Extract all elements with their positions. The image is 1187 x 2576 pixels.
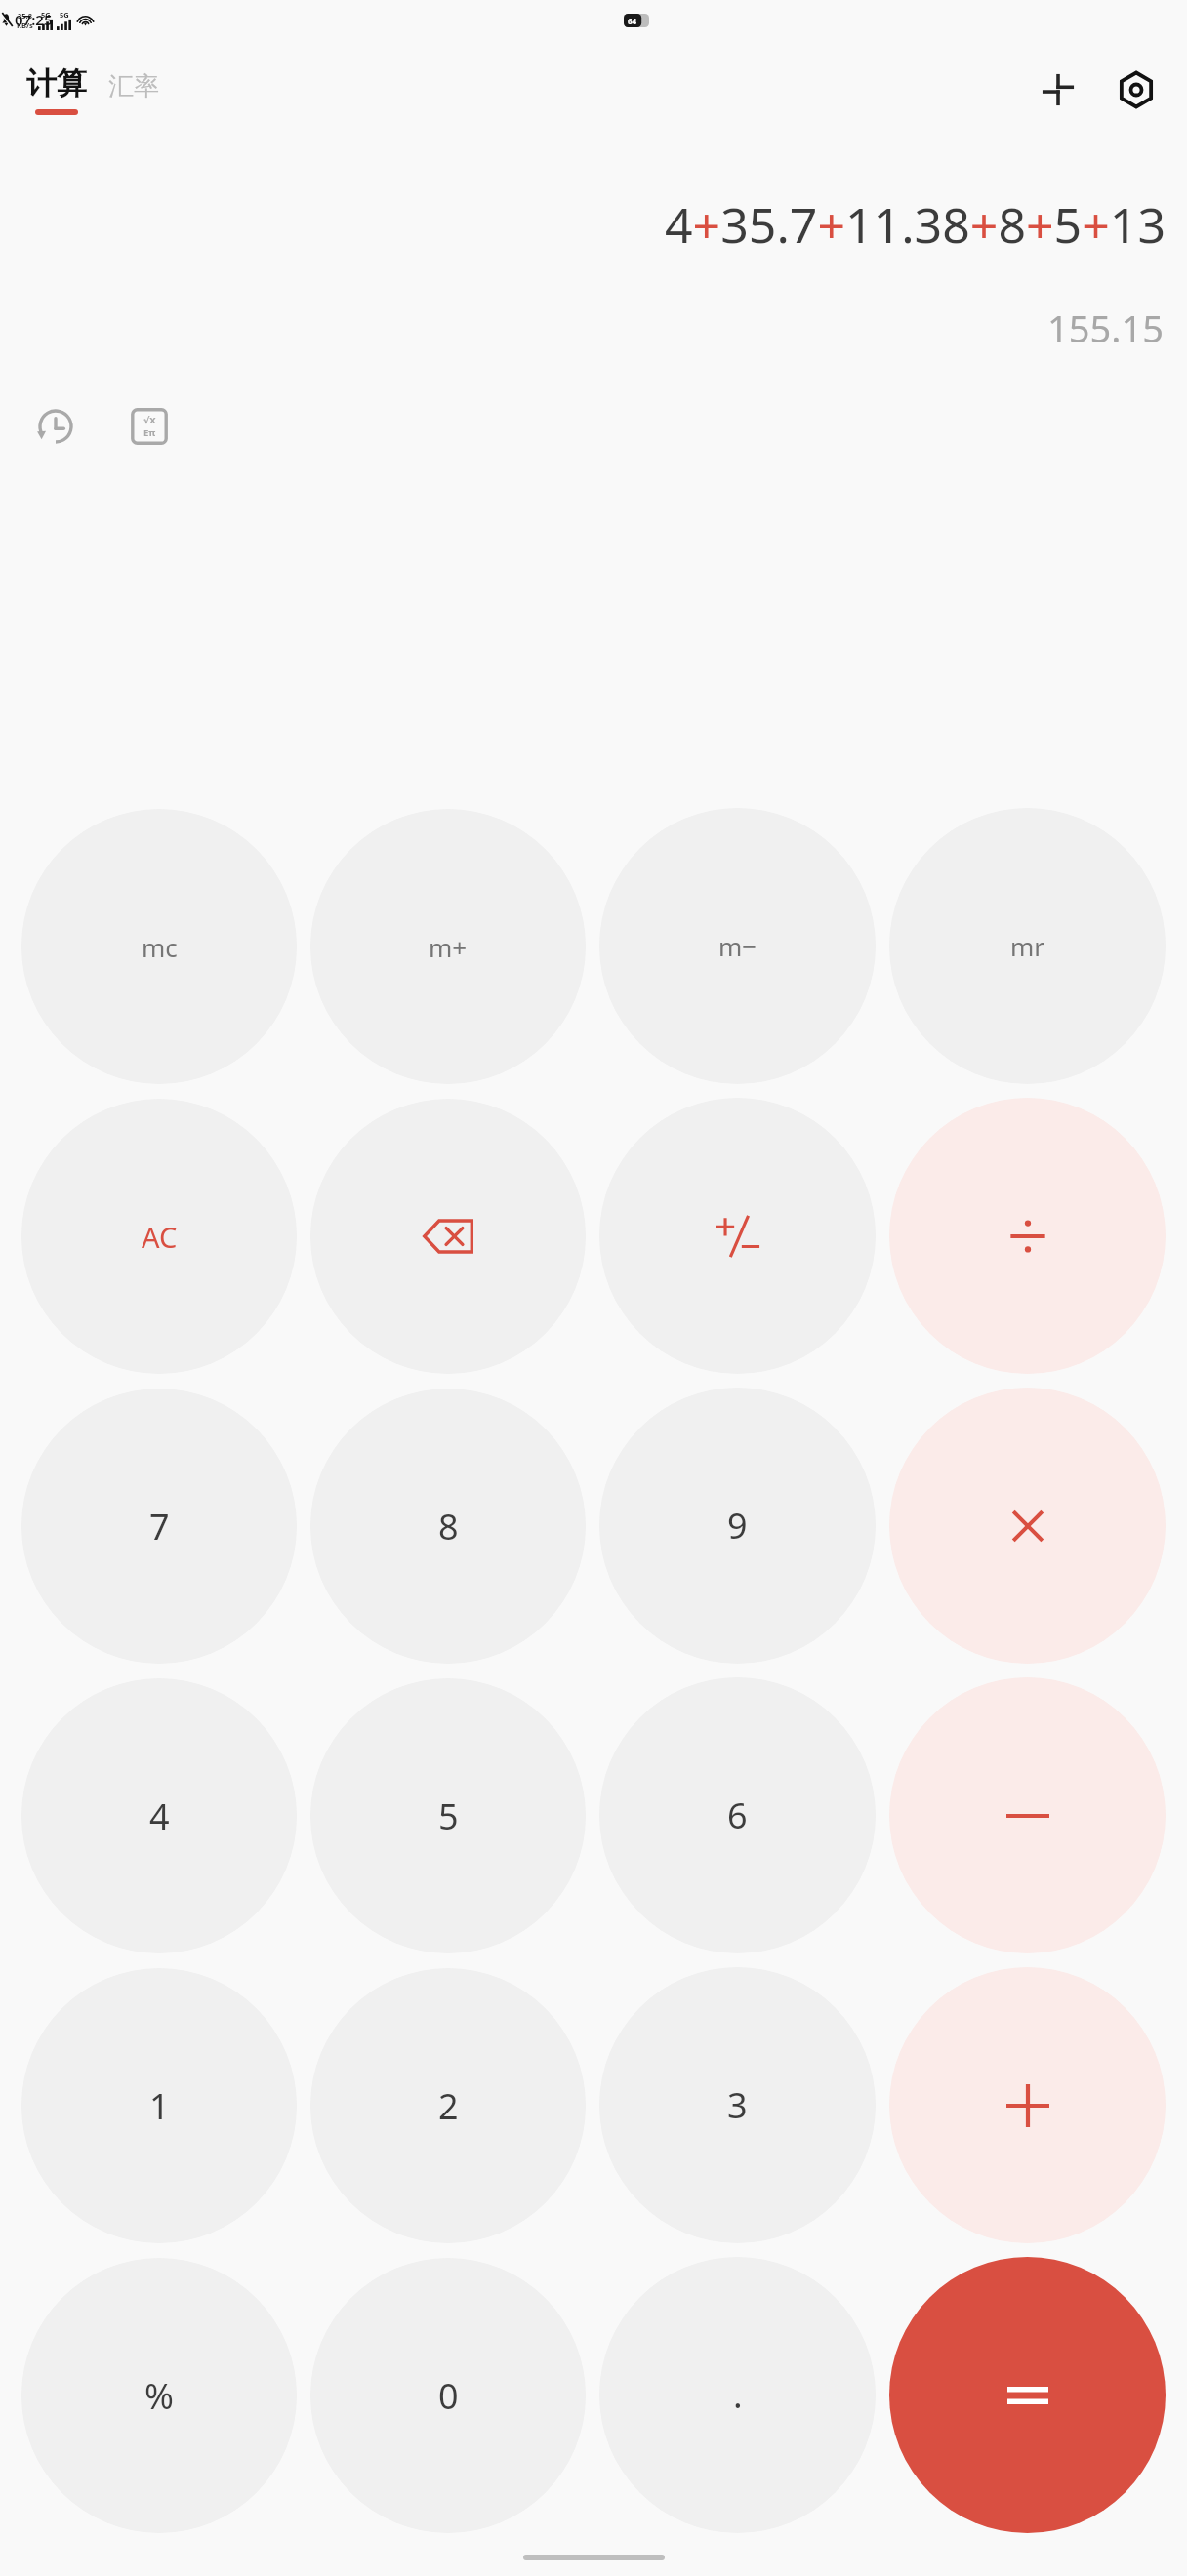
- staticText: AC: [142, 1218, 178, 1256]
- button[interactable]: Settings: [1111, 64, 1162, 115]
- button[interactable]: 7: [21, 1389, 297, 1664]
- button[interactable]: 0: [310, 2258, 586, 2533]
- staticText: Eπ: [143, 426, 156, 439]
- button[interactable]: m+: [310, 809, 586, 1084]
- staticText: 8: [438, 1503, 459, 1550]
- staticText: 5G: [41, 10, 51, 20]
- button[interactable]: Scientific mode: [119, 396, 180, 457]
- staticText: 5: [438, 1792, 459, 1840]
- button[interactable]: 5: [310, 1678, 586, 1953]
- staticText: 0: [438, 2372, 459, 2420]
- staticText: 5G: [60, 10, 69, 20]
- staticText: 4+35.7+11.38+8+5+13: [665, 191, 1166, 258]
- staticText: 2: [438, 2082, 459, 2130]
- button[interactable]: History: [25, 396, 86, 457]
- button[interactable]: AC: [21, 1099, 297, 1374]
- staticText: √X: [143, 414, 156, 426]
- button[interactable]: %: [21, 2258, 297, 2533]
- button[interactable]: mr: [889, 808, 1166, 1084]
- staticText: mr: [1010, 929, 1045, 963]
- staticText: KB/s: [17, 20, 33, 30]
- button[interactable]: Equals: [889, 2257, 1166, 2533]
- button[interactable]: .: [599, 2257, 876, 2533]
- button[interactable]: Multiply: [889, 1388, 1166, 1664]
- button[interactable]: 3: [599, 1967, 876, 2243]
- button[interactable]: 计算: [26, 64, 87, 115]
- staticText: 4: [149, 1792, 170, 1840]
- staticText: 3: [727, 2081, 748, 2129]
- button[interactable]: Plus: [889, 1967, 1166, 2243]
- button[interactable]: 2: [310, 1968, 586, 2243]
- button[interactable]: 4: [21, 1678, 297, 1953]
- staticText: 155.15: [1047, 302, 1164, 353]
- staticText: %: [144, 2372, 174, 2420]
- button[interactable]: Minus: [889, 1677, 1166, 1953]
- button[interactable]: Collapse: [1033, 64, 1084, 115]
- staticText: 9: [727, 1502, 748, 1550]
- button[interactable]: Plus minus: [599, 1098, 876, 1374]
- button[interactable]: 9: [599, 1388, 876, 1664]
- staticText: 64: [628, 16, 637, 26]
- button[interactable]: 汇率: [108, 70, 159, 115]
- staticText: 1: [149, 2082, 170, 2130]
- button[interactable]: 8: [310, 1389, 586, 1664]
- staticText: 07:25: [15, 10, 53, 29]
- button[interactable]: m−: [599, 808, 876, 1084]
- staticText: 6: [727, 1791, 748, 1839]
- button[interactable]: mc: [21, 809, 297, 1084]
- staticText: 7: [149, 1503, 170, 1550]
- staticText: m−: [718, 929, 757, 963]
- staticText: m+: [429, 930, 468, 964]
- button[interactable]: 6: [599, 1677, 876, 1953]
- staticText: .: [733, 2371, 743, 2419]
- button[interactable]: Backspace: [310, 1099, 586, 1374]
- staticText: 计算: [26, 64, 87, 102]
- staticText: mc: [142, 930, 178, 964]
- staticText: 35.8: [18, 11, 32, 20]
- button[interactable]: 1: [21, 1968, 297, 2243]
- staticText: 汇率: [108, 70, 159, 102]
- button[interactable]: Divide: [889, 1098, 1166, 1374]
